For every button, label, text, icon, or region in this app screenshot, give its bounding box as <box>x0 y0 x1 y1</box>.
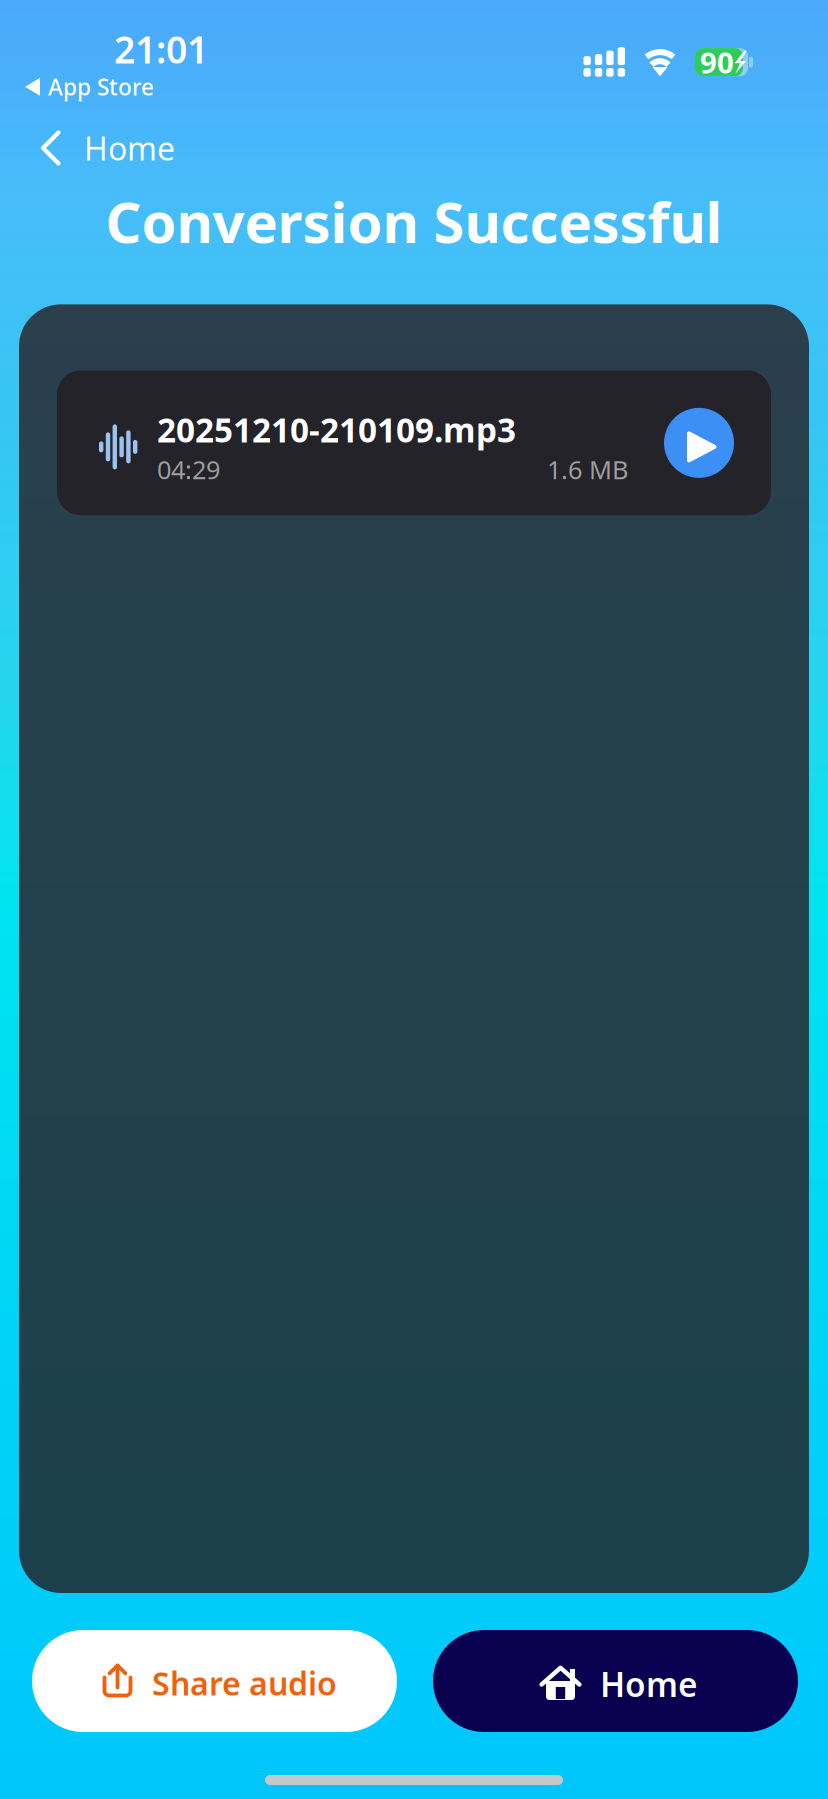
staticText: Share audio <box>152 1662 337 1704</box>
staticText: 1.6 MB <box>547 453 628 486</box>
staticText: 04:29 <box>157 453 220 486</box>
button[interactable]: Home <box>433 1630 798 1732</box>
staticText: Home <box>600 1662 698 1706</box>
staticText: Home <box>84 127 175 169</box>
staticText: 20251210-210109.mp3 <box>157 407 516 452</box>
button[interactable]: Play <box>664 408 734 478</box>
button[interactable]: Home <box>0 119 175 177</box>
staticText: 90 <box>700 43 734 82</box>
staticText: App Store <box>48 72 154 102</box>
staticText: 21:01 <box>114 24 208 74</box>
staticText: Conversion Successful <box>105 184 722 258</box>
button[interactable]: Share audio <box>32 1630 397 1732</box>
